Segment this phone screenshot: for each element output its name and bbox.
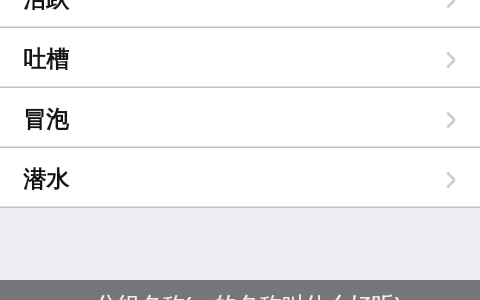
other: Open: [442, 111, 460, 129]
staticText: 吐槽: [23, 45, 69, 74]
staticText: 潜水: [23, 165, 69, 194]
staticText: 分组名称(一的名称叫什么好听): [95, 289, 401, 300]
button[interactable]: 吐槽: [0, 28, 480, 88]
button[interactable]: 冒泡: [0, 88, 480, 148]
other: Open: [442, 51, 460, 69]
staticText: 冒泡: [23, 105, 69, 134]
other: Open: [442, 171, 460, 189]
staticText: 活跃: [23, 0, 69, 14]
button[interactable]: 潜水: [0, 148, 480, 208]
other: Open: [442, 0, 460, 9]
button[interactable]: 活跃: [0, 0, 480, 28]
